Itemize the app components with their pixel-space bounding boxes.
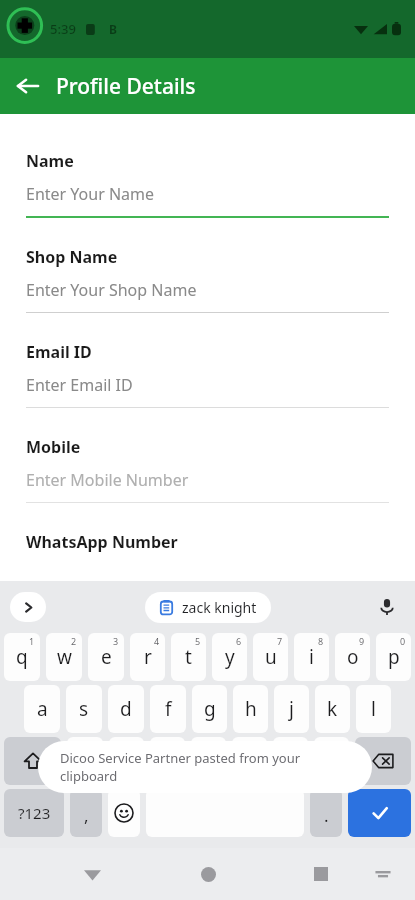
staticText: e [101,644,112,670]
staticText: B [109,21,117,37]
staticText: a [37,696,48,722]
staticText: b [244,748,256,774]
staticText: 1 [29,635,35,647]
staticText: y [225,644,235,670]
staticText: p [388,644,400,670]
staticText: 5:39 [50,20,76,38]
staticText: Email ID [26,341,92,363]
staticText: z [81,748,90,774]
button[interactable]: t [171,633,206,681]
button[interactable]: Enter [348,789,411,837]
staticText: u [265,644,277,670]
staticText: Enter Mobile Number [26,469,189,491]
button[interactable]: p [376,633,411,681]
staticText: clipboard [60,767,118,785]
staticText: g [204,696,216,722]
button[interactable]: i [294,633,329,681]
staticText: . [324,804,329,827]
button[interactable]: Backspace [355,737,411,785]
button[interactable]: Back [70,852,114,896]
staticText: Shop Name [26,246,118,268]
button[interactable]: q [4,633,40,681]
button[interactable]: Recents [299,852,343,896]
staticText: q [16,644,28,670]
button[interactable]: Home [186,852,230,896]
button[interactable]: d [108,685,144,733]
staticText: c [163,748,173,774]
staticText: l [371,696,376,722]
staticText: ?123 [18,803,51,823]
button[interactable]: f [150,685,186,733]
button[interactable]: ?123 [4,789,64,837]
staticText: v [204,748,214,774]
button[interactable]: Enter Email ID [26,363,389,407]
staticText: Profile Details [56,72,196,101]
staticText: o [347,644,359,670]
button[interactable]: Enter Your Name [26,172,389,216]
button[interactable]: Voice input [371,591,403,623]
staticText: 3 [113,635,119,647]
staticText: w [57,644,72,670]
staticText: 2 [71,635,77,647]
staticText: t [185,644,192,670]
button[interactable]: v [191,737,226,785]
button[interactable]: e [88,633,124,681]
staticText: Name [26,150,74,172]
button[interactable]: w [46,633,82,681]
button[interactable]: b [232,737,267,785]
staticText: WhatsApp Number [26,531,178,553]
button[interactable]: u [253,633,288,681]
button[interactable]: Switch keyboard [363,854,403,894]
button[interactable]: k [315,685,350,733]
staticText: Enter Your Shop Name [26,279,197,301]
staticText: x [121,748,132,774]
staticText: Enter Email ID [26,374,133,396]
staticText: n [285,748,297,774]
staticText: r [144,644,152,670]
button[interactable]: j [274,685,309,733]
button[interactable]: Enter Mobile Number [26,458,389,502]
staticText: Enter Your Name [26,183,155,205]
staticText: j [289,696,294,722]
button[interactable]: s [66,685,102,733]
button[interactable]: l [356,685,391,733]
staticText: s [79,696,89,722]
button[interactable]: g [192,685,227,733]
button[interactable]: x [109,737,144,785]
button[interactable]: n [273,737,308,785]
staticText: 7 [277,635,283,647]
button[interactable]: Back [0,58,56,114]
staticText: i [309,644,314,670]
button[interactable]: Expand suggestions [10,592,46,622]
button[interactable]: Dicoo Service Partner pasted from your [38,741,372,793]
staticText: 5 [195,635,201,647]
button[interactable]: zack knight [145,592,271,623]
staticText: d [120,696,132,722]
staticText: h [245,696,257,722]
button[interactable]: r [130,633,165,681]
button[interactable]: c [150,737,185,785]
button[interactable]: . [310,789,342,837]
button[interactable]: y [212,633,247,681]
staticText: , [84,804,89,827]
button[interactable]: o [335,633,370,681]
staticText: f [165,696,172,722]
staticText: 9 [359,635,365,647]
staticText: 4 [154,635,160,647]
staticText: Dicoo Service Partner pasted from your [60,749,301,767]
button[interactable]: z [67,737,103,785]
staticText: 0 [400,635,406,647]
button[interactable]: Shift [4,737,61,785]
button[interactable]: , [70,789,102,837]
staticText: k [327,696,338,722]
button[interactable]: Enter Your Shop Name [26,268,389,312]
staticText: 8 [318,635,324,647]
staticText: 6 [236,635,242,647]
button[interactable]: Emoji [108,789,140,837]
button[interactable]: h [233,685,268,733]
button[interactable]: a [24,685,60,733]
staticText: zack knight [182,598,257,617]
